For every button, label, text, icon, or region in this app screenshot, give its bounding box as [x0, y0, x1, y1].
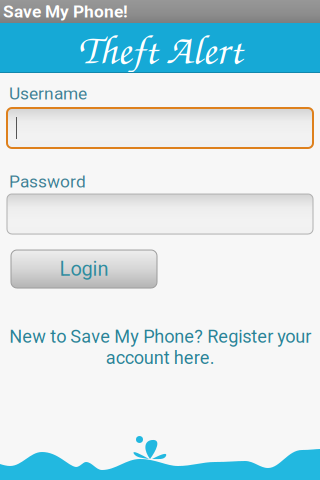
button[interactable]: New to Save My Phone? Register your acco… — [0, 326, 320, 368]
staticText: Save My Phone! — [3, 1, 128, 22]
staticText: Username — [9, 83, 87, 104]
button[interactable]: Login — [11, 250, 157, 288]
staticText: New to Save My Phone? Register your acco… — [9, 326, 311, 368]
staticText: Password — [9, 171, 86, 192]
staticText: Theft Alert — [78, 21, 242, 75]
staticText: Login — [59, 257, 108, 281]
